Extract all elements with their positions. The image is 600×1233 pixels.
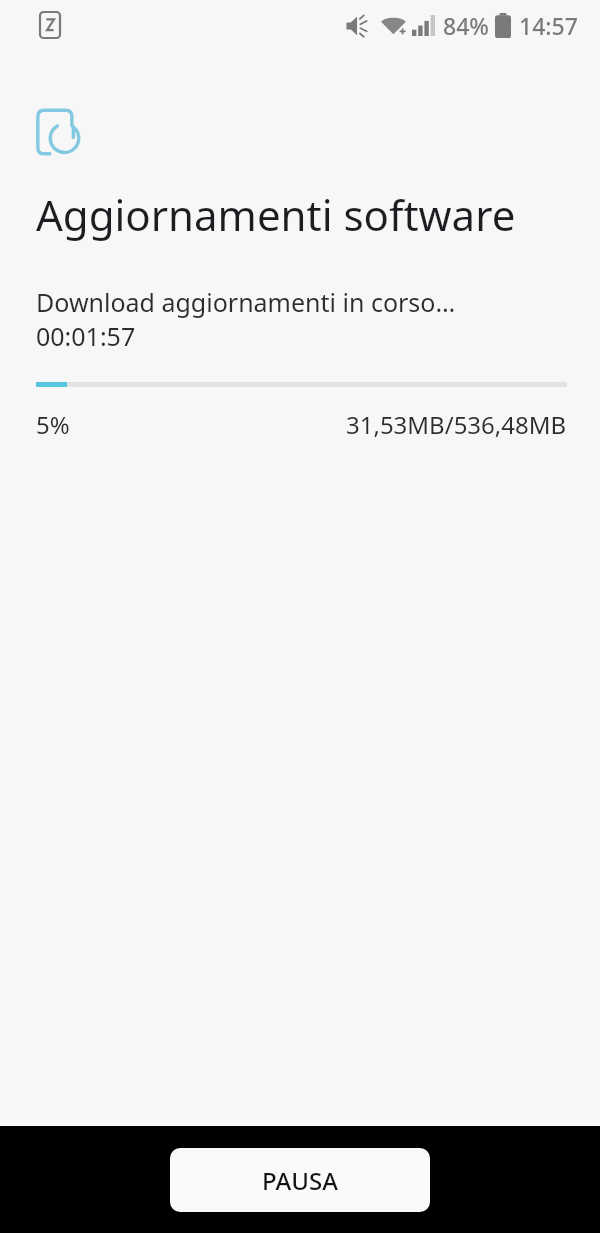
staticText: Aggiornamenti software	[36, 186, 516, 243]
staticText: 14:57	[519, 10, 578, 41]
other: Software update	[36, 106, 82, 158]
button[interactable]: PAUSA	[170, 1148, 430, 1212]
staticText: 31,53MB/536,48MB	[346, 408, 567, 441]
staticText: PAUSA	[262, 1164, 338, 1197]
staticText: 84%	[443, 10, 489, 41]
staticText: 00:01:57	[36, 319, 136, 353]
other: Notification	[40, 12, 60, 38]
staticText: Download aggiornamenti in corso…	[36, 285, 456, 319]
staticText: 5%	[36, 408, 70, 441]
